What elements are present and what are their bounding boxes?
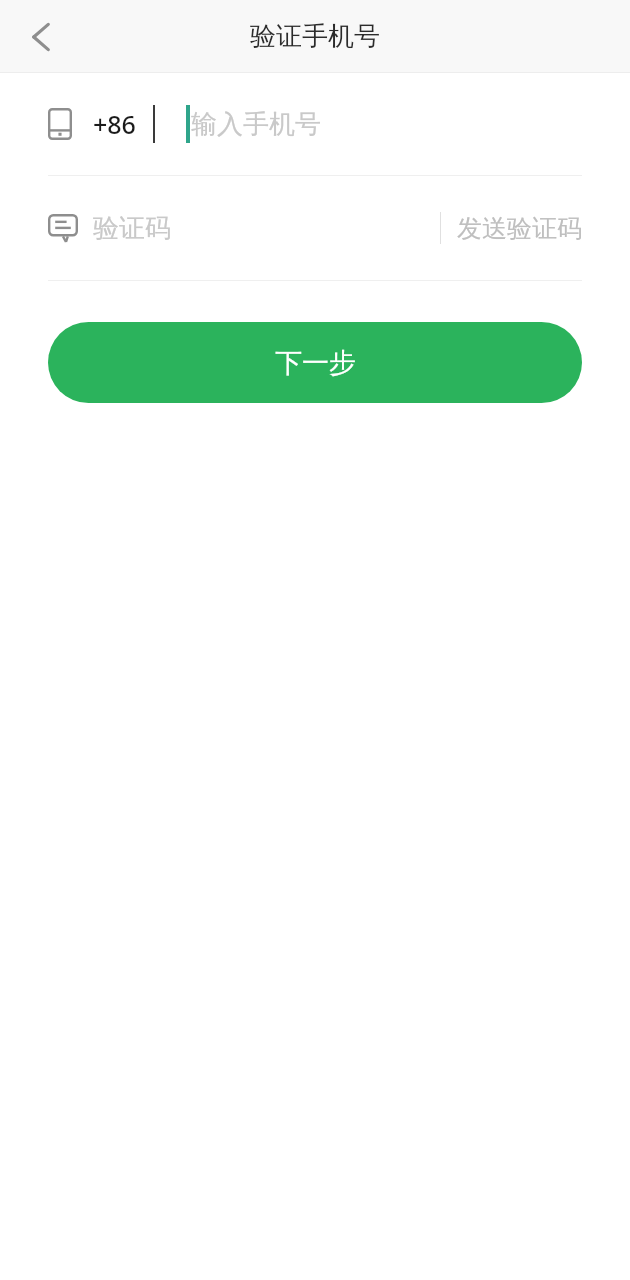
staticText: 验证码 (93, 212, 171, 245)
staticText: 下一步 (275, 346, 356, 380)
staticText: 验证手机号 (250, 20, 380, 53)
button[interactable]: 发送验证码 (441, 176, 582, 280)
button[interactable]: +86 (0, 73, 630, 175)
staticText: 输入手机号 (191, 108, 321, 141)
staticText: +86 (93, 107, 136, 141)
button[interactable]: 验证码 (48, 176, 440, 280)
staticText: 发送验证码 (457, 213, 582, 244)
button[interactable]: Back (6, 0, 76, 73)
button[interactable]: 下一步 (48, 322, 582, 403)
